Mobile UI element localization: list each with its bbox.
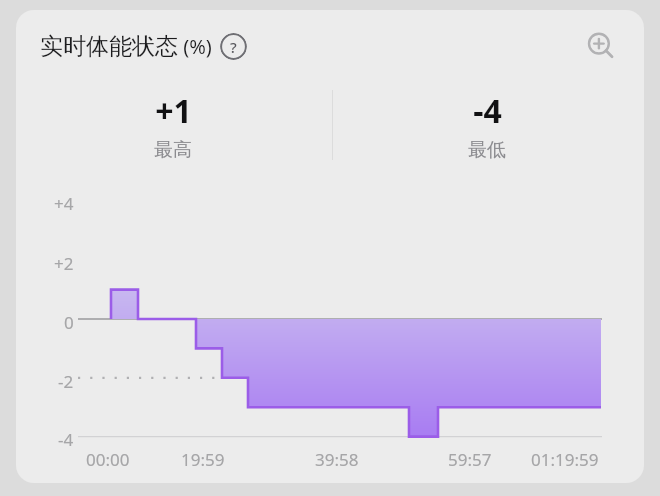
button[interactable]: Zoom in bbox=[580, 25, 622, 67]
staticText: 19:59 bbox=[181, 448, 225, 471]
staticText: -4 bbox=[58, 428, 74, 451]
staticText: 最高 bbox=[154, 138, 192, 162]
button[interactable]: Help bbox=[220, 33, 247, 60]
staticText: 0 bbox=[64, 311, 74, 334]
staticText: 59:57 bbox=[448, 448, 492, 471]
staticText: 00:00 bbox=[86, 448, 130, 471]
staticText: 最低 bbox=[468, 138, 506, 162]
staticText: (%) bbox=[178, 33, 212, 60]
staticText: ? bbox=[230, 37, 237, 57]
staticText: +4 bbox=[54, 192, 74, 215]
staticText: +1 bbox=[155, 89, 192, 133]
staticText: 实时体能状态 bbox=[40, 32, 178, 61]
staticText: 01:19:59 bbox=[531, 448, 599, 471]
staticText: -4 bbox=[473, 89, 502, 133]
staticText: -2 bbox=[58, 370, 74, 393]
staticText: 39:58 bbox=[315, 448, 359, 471]
staticText: +2 bbox=[54, 252, 74, 275]
